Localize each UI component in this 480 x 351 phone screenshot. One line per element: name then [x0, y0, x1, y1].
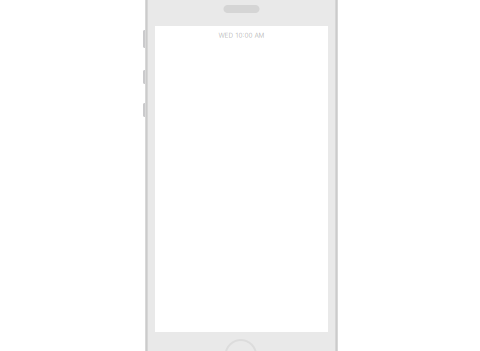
- button[interactable]: Volume up: [143, 70, 149, 84]
- staticText: WED 10:00 AM: [218, 31, 264, 39]
- button[interactable]: Home: [226, 340, 256, 351]
- button[interactable]: Ring / silent switch: [143, 30, 149, 48]
- button[interactable]: Volume down: [143, 103, 149, 117]
